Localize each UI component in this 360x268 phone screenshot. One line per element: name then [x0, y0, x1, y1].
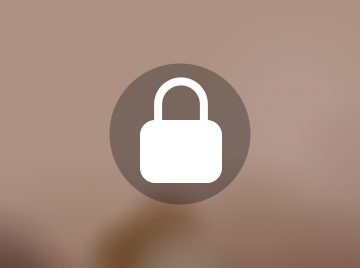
button[interactable]: Locked — tap to unlock — [109, 63, 250, 204]
